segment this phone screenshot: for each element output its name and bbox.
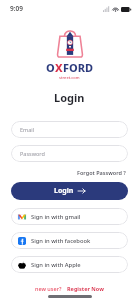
button[interactable]: Sign in with gmail [11, 208, 128, 225]
staticText: new user? [35, 285, 62, 292]
button[interactable]: Forgot Password ? [75, 167, 128, 178]
staticText: Sign in with Apple [31, 261, 81, 269]
staticText: Login [54, 90, 85, 105]
staticText: O [46, 60, 55, 75]
button[interactable]: Email [11, 121, 128, 138]
button[interactable]: Register Now [66, 284, 105, 293]
staticText: Register Now [67, 285, 104, 292]
staticText: street.com [59, 75, 80, 80]
staticText: Sign in with facebook [31, 237, 91, 245]
staticText: 9:09 [10, 4, 23, 13]
staticText: X [55, 60, 63, 75]
staticText: FORD [63, 60, 94, 75]
staticText: Email [20, 126, 35, 133]
button[interactable]: Login [11, 182, 128, 200]
staticText: Login [54, 186, 74, 196]
button[interactable]: Sign in with Apple [11, 256, 128, 273]
staticText: Forgot Password ? [77, 169, 126, 176]
button[interactable]: Sign in with facebook [11, 232, 128, 249]
button[interactable]: Password [11, 145, 128, 162]
staticText: Password [20, 150, 45, 157]
staticText: Sign in with gmail [31, 213, 81, 221]
